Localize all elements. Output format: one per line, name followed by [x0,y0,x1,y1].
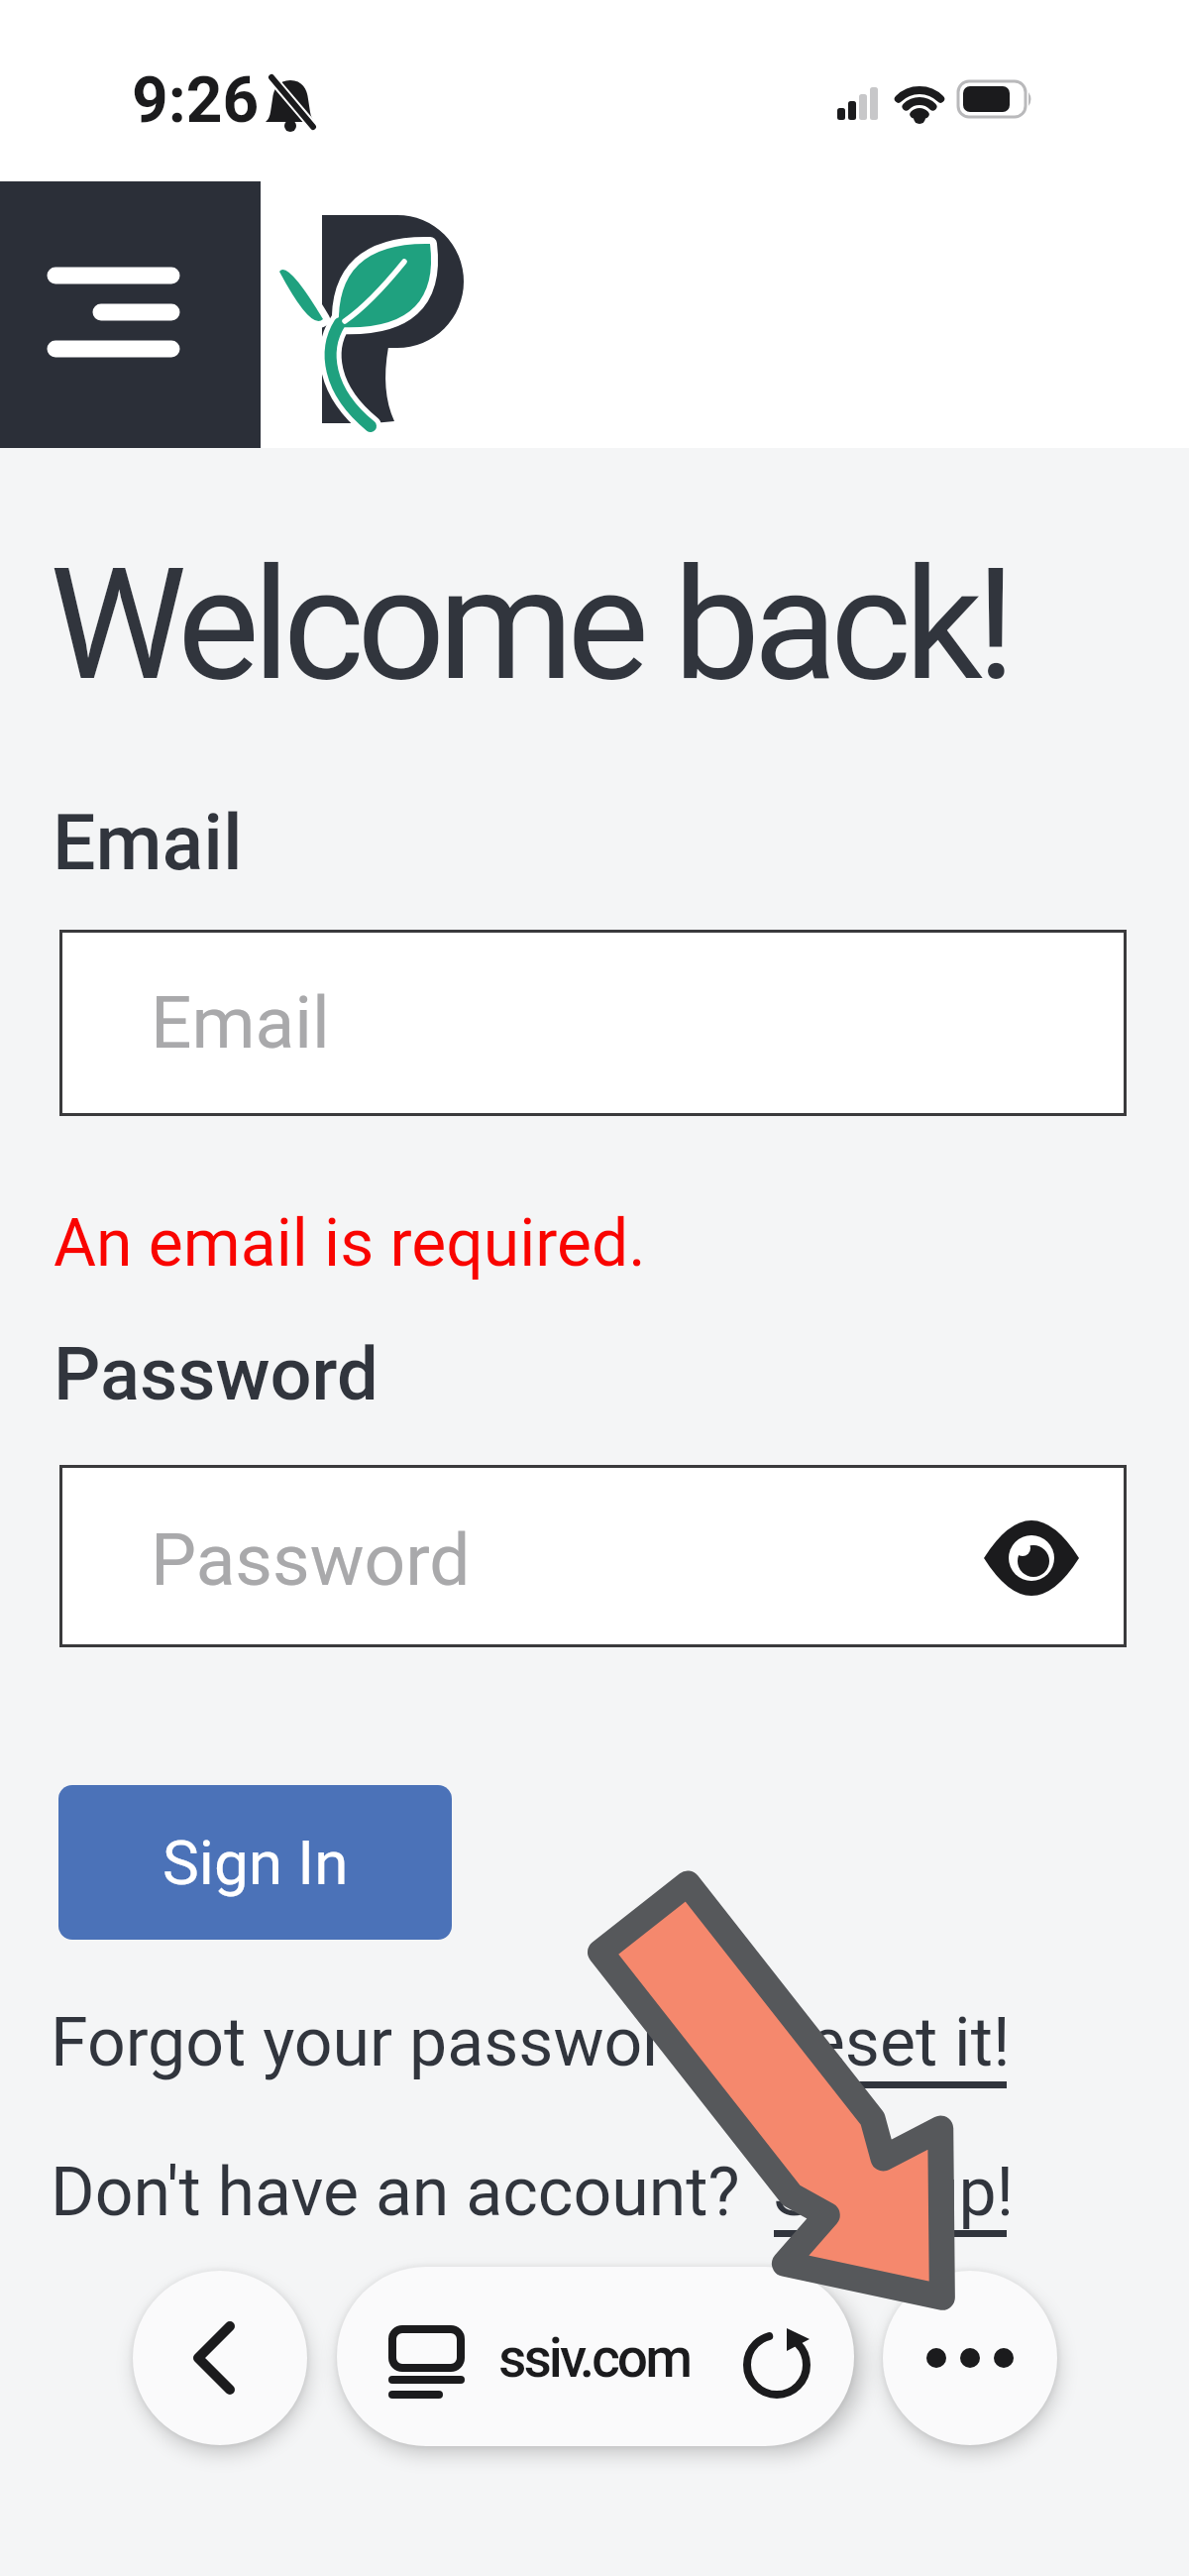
button[interactable]: Email [59,930,1127,1116]
button[interactable] [743,2327,814,2399]
button[interactable]: Forgot your password? Reset it! [51,2003,1011,2082]
staticText: Password [54,1331,378,1417]
staticText: 9:26 [132,63,260,138]
button[interactable]: Don't have an account? Sign up! [51,2153,1015,2232]
button[interactable] [133,2271,307,2445]
staticText: Email [53,799,243,888]
button[interactable] [984,1520,1079,1596]
staticText: Welcome back! [50,534,1009,716]
staticText: ssiv.com [498,2326,691,2390]
staticText: An email is required. [54,1205,646,1282]
button[interactable] [883,2271,1057,2445]
button[interactable]: Password [59,1465,1127,1647]
staticText: Email [151,980,330,1065]
button[interactable]: Sign In [58,1785,452,1940]
staticText: Sign In [162,1827,349,1899]
button[interactable]: ssiv.com [337,2267,854,2446]
button[interactable] [0,181,261,448]
staticText: Password [151,1517,471,1603]
